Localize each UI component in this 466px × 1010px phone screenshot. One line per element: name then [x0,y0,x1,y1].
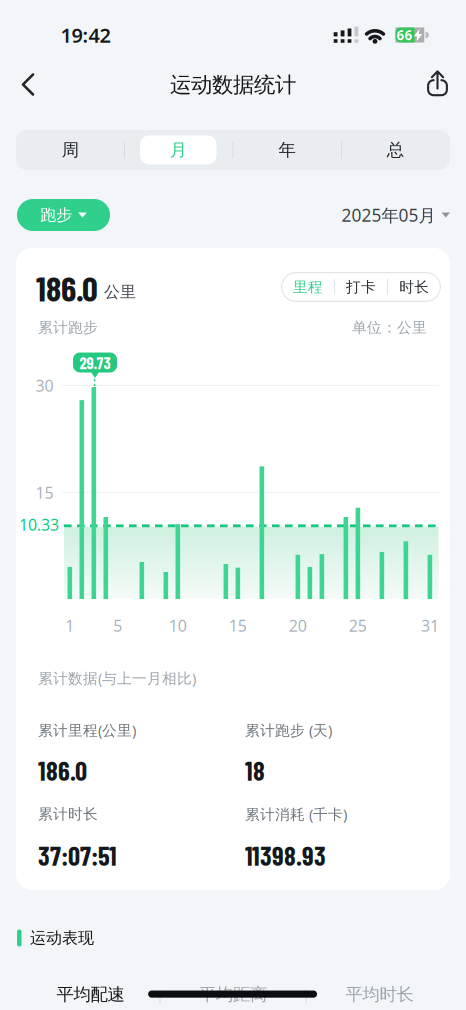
staticText: 10.33 [19,514,59,535]
staticText: 公里 [104,282,136,302]
staticText: 累计跑步 [38,318,98,336]
button[interactable]: 总 [345,130,445,170]
staticText: 平均配速 [56,984,124,1005]
staticText: 186.0 [36,267,98,308]
staticText: 累计里程(公里) [38,720,136,740]
staticText: 37:07:51 [38,839,117,871]
button[interactable] [6,62,50,106]
button[interactable]: 时长 [388,272,441,302]
staticText: 累计消耗 (千卡) [245,804,347,824]
staticText: 平均距离 [199,984,267,1005]
staticText: 累计时长 [38,805,98,823]
staticText: 时长 [399,278,429,296]
staticText: 29.73 [79,352,110,372]
staticText: 总 [387,139,404,161]
staticText: 15 [35,482,53,503]
staticText: 18 [245,754,265,786]
button[interactable]: 平均时长 [319,974,439,1010]
staticText: 周 [62,139,79,161]
staticText: 11398.93 [245,839,326,871]
button[interactable] [140,135,217,164]
staticText: 里程 [293,278,323,296]
staticText: 19:42 [60,22,110,48]
staticText: 66 [396,26,412,44]
staticText: 2025年05月 [341,203,435,226]
staticText: 运动数据统计 [170,72,296,98]
staticText: 20 [289,615,307,636]
button[interactable]: 里程 [281,272,334,302]
staticText: 月 [170,139,187,161]
staticText: 1 [65,615,74,636]
staticText: 25 [349,615,367,636]
button[interactable]: 年 [237,130,337,170]
button[interactable]: 月 [140,135,216,164]
staticText: 打卡 [346,278,376,296]
button[interactable]: 平均配速 [30,974,150,1010]
staticText: 30 [35,375,53,396]
button[interactable]: 2025年05月 [290,195,450,235]
staticText: 跑步 [40,205,72,225]
button[interactable] [415,62,459,106]
staticText: 186.0 [38,754,87,786]
staticText: 运动表现 [30,928,94,948]
staticText: 单位：公里 [352,318,427,336]
staticText: 累计跑步 (天) [245,720,332,740]
button[interactable]: 周 [20,130,120,170]
button[interactable]: 平均距离 [173,974,293,1010]
staticText: 15 [229,615,247,636]
staticText: 5 [113,615,122,636]
staticText: 年 [278,139,295,161]
staticText: 10 [169,615,187,636]
staticText: 31 [421,615,439,636]
button[interactable]: 打卡 [334,272,387,302]
staticText: 累计数据(与上一月相比) [38,668,196,688]
staticText: 平均时长 [345,984,413,1005]
button[interactable]: 跑步 [17,199,110,231]
